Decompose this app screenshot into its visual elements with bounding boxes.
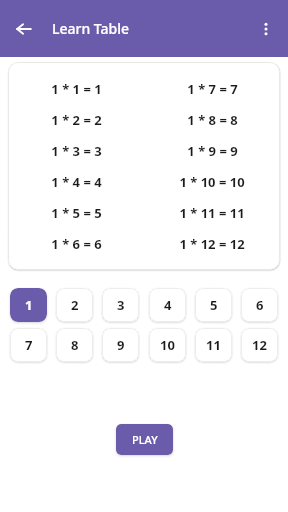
- staticText: 1 * 12 = 12: [179, 235, 245, 253]
- staticText: 5: [210, 296, 218, 314]
- button[interactable]: 3: [102, 288, 139, 322]
- staticText: 3: [117, 296, 125, 314]
- button[interactable]: 12: [241, 328, 278, 362]
- staticText: 1 * 6 = 6: [51, 235, 102, 253]
- staticText: 12: [252, 336, 267, 354]
- staticText: 7: [25, 336, 33, 354]
- staticText: 1 * 1 = 1: [51, 80, 102, 98]
- staticText: 11: [206, 336, 221, 354]
- staticText: 1 * 9 = 9: [187, 142, 238, 160]
- button[interactable]: 11: [195, 328, 232, 362]
- staticText: 1 * 10 = 10: [179, 173, 245, 191]
- button[interactable]: 9: [102, 328, 139, 362]
- staticText: Learn Table: [52, 19, 130, 38]
- staticText: 8: [71, 336, 79, 354]
- staticText: 2: [71, 296, 79, 314]
- staticText: 1 * 8 = 8: [187, 111, 238, 129]
- button[interactable]: 6: [241, 288, 278, 322]
- staticText: 1: [25, 296, 33, 314]
- button[interactable]: 5: [195, 288, 232, 322]
- button[interactable]: PLAY: [116, 424, 173, 455]
- staticText: 1 * 2 = 2: [51, 111, 102, 129]
- button[interactable]: 1: [10, 288, 47, 322]
- staticText: 1 * 11 = 11: [179, 204, 245, 222]
- staticText: 6: [256, 296, 264, 314]
- staticText: 4: [164, 296, 172, 314]
- button[interactable]: More options: [250, 13, 282, 45]
- button[interactable]: 4: [149, 288, 186, 322]
- staticText: 1 * 4 = 4: [51, 173, 102, 191]
- button[interactable]: 10: [149, 328, 186, 362]
- button[interactable]: 8: [56, 328, 93, 362]
- staticText: 10: [160, 336, 175, 354]
- button[interactable]: 7: [10, 328, 47, 362]
- staticText: 1 * 7 = 7: [187, 80, 238, 98]
- button[interactable]: Back: [8, 13, 40, 45]
- staticText: 1 * 3 = 3: [51, 142, 102, 160]
- staticText: 9: [117, 336, 125, 354]
- staticText: PLAY: [132, 432, 158, 447]
- button[interactable]: 2: [56, 288, 93, 322]
- staticText: 1 * 5 = 5: [51, 204, 102, 222]
